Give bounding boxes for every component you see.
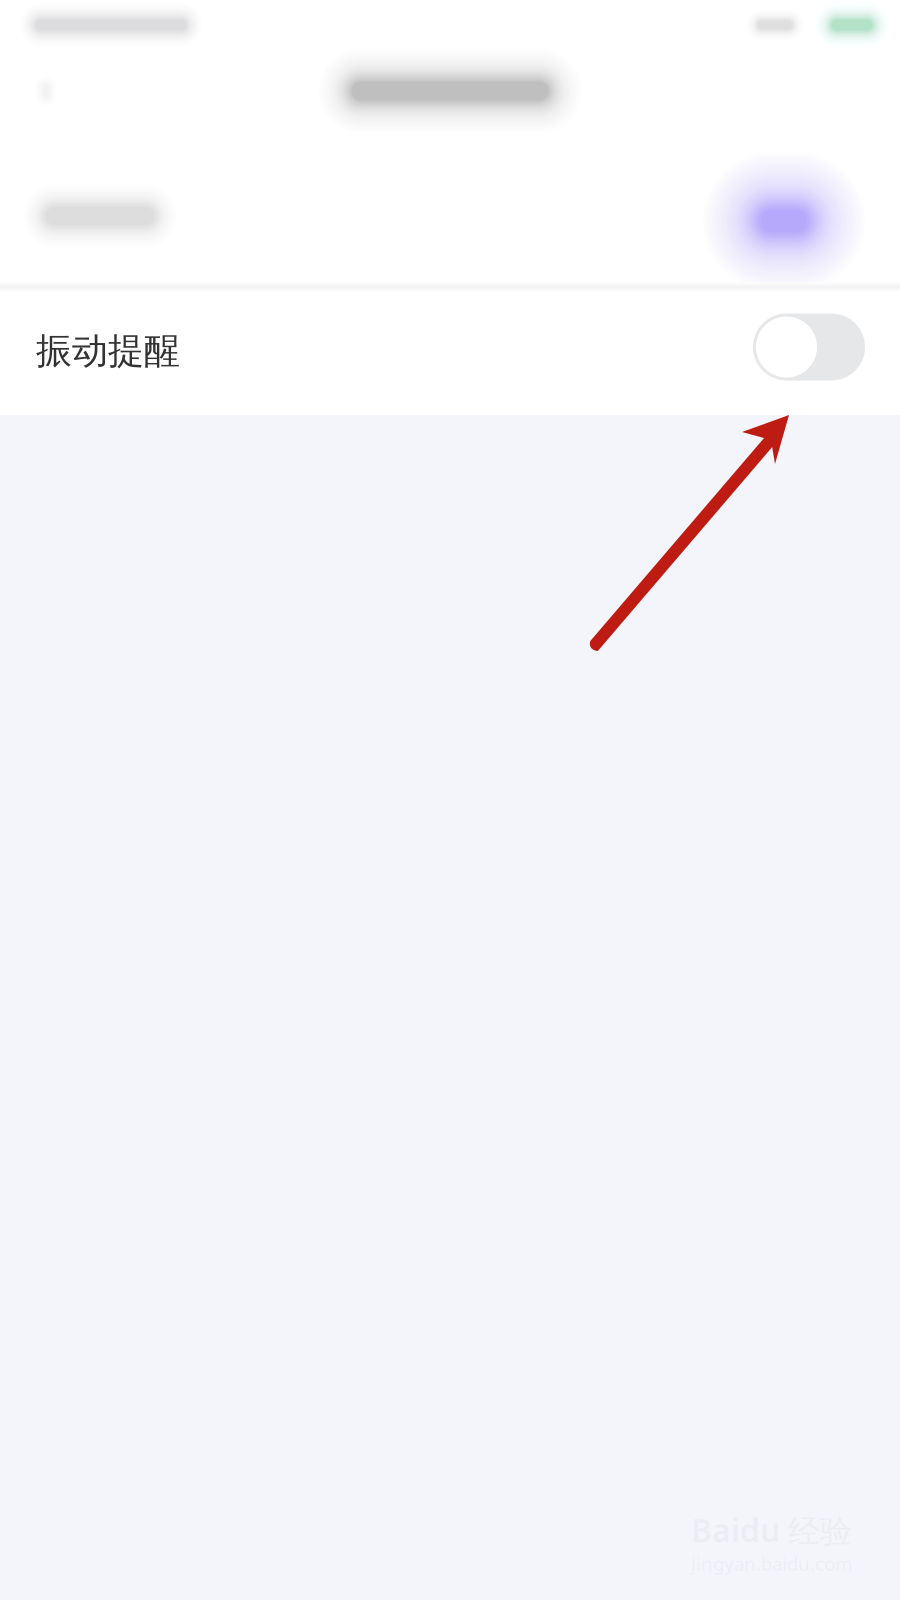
button[interactable]: 振动提醒 bbox=[0, 292, 900, 415]
staticText: 振动提醒 bbox=[36, 329, 180, 373]
staticText: Baidu 经验 bbox=[691, 1508, 852, 1551]
button[interactable]: Setting bbox=[0, 132, 900, 282]
